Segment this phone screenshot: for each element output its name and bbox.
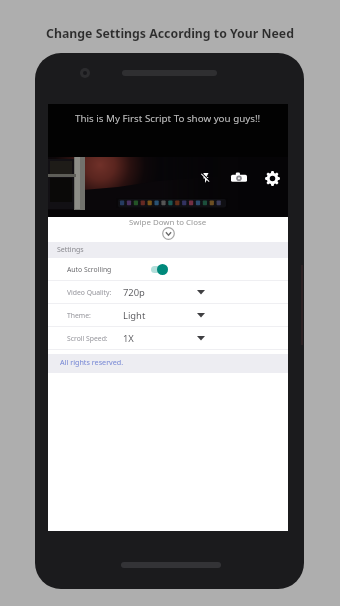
button[interactable]: Video Quality: [48, 281, 288, 303]
button[interactable]: Camera [228, 167, 250, 189]
staticText: 1X [123, 332, 134, 345]
button[interactable]: Flash off [195, 167, 217, 189]
button[interactable]: Swipe Down to Close [48, 217, 288, 242]
button[interactable]: Theme: [48, 304, 288, 326]
button[interactable] [153, 262, 173, 276]
staticText: Theme: [67, 311, 91, 320]
staticText: 720p [123, 286, 145, 299]
staticText: Scroll Speed: [67, 334, 108, 343]
button[interactable]: Scroll Speed: [48, 327, 288, 349]
staticText: Settings [57, 245, 84, 255]
staticText: Change Settings According to Your Need [46, 25, 294, 42]
staticText: Auto Scrolling [67, 265, 112, 274]
staticText: Video Quality: [67, 288, 112, 297]
button[interactable]: Auto Scrolling [48, 258, 288, 280]
staticText: Light [123, 309, 146, 322]
staticText: Swipe Down to Close [129, 217, 207, 228]
button[interactable]: Settings [261, 167, 283, 189]
staticText: All rights reserved. [60, 357, 124, 367]
staticText: This is My First Script To show you guys… [75, 112, 261, 125]
